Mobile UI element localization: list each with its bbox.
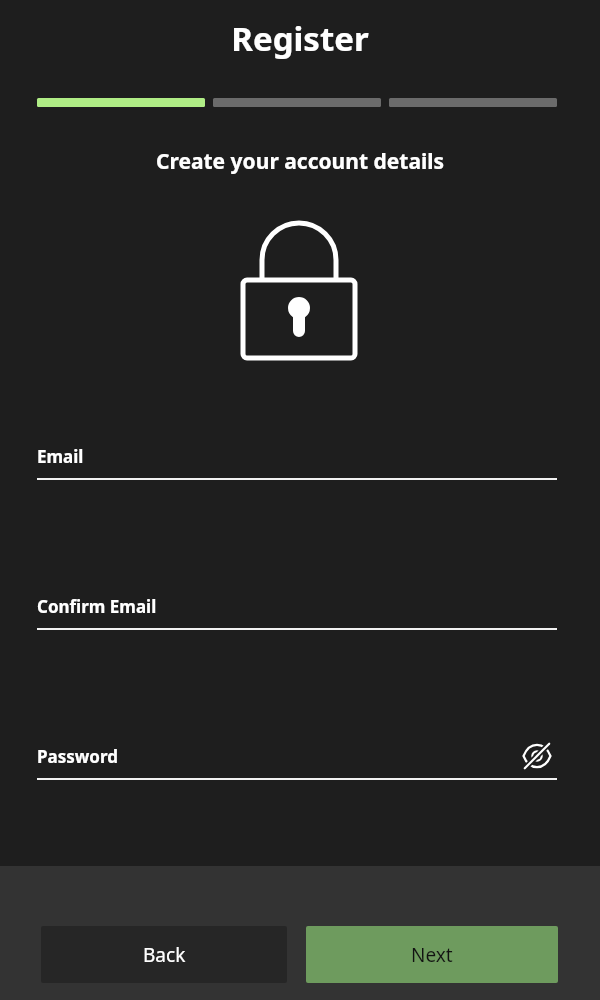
- staticText: Next: [411, 942, 453, 968]
- staticText: Create your account details: [0, 147, 600, 176]
- button[interactable]: Show password: [517, 736, 557, 776]
- staticText: Password: [37, 745, 118, 768]
- button[interactable]: Password: [37, 732, 557, 780]
- staticText: Back: [143, 942, 186, 968]
- button[interactable]: Confirm Email: [37, 582, 557, 630]
- button[interactable]: Back: [41, 926, 287, 983]
- staticText: Register: [0, 16, 600, 61]
- button[interactable]: Email: [37, 432, 557, 480]
- staticText: Email: [37, 445, 84, 468]
- button[interactable]: Next: [306, 926, 558, 983]
- staticText: Confirm Email: [37, 595, 157, 618]
